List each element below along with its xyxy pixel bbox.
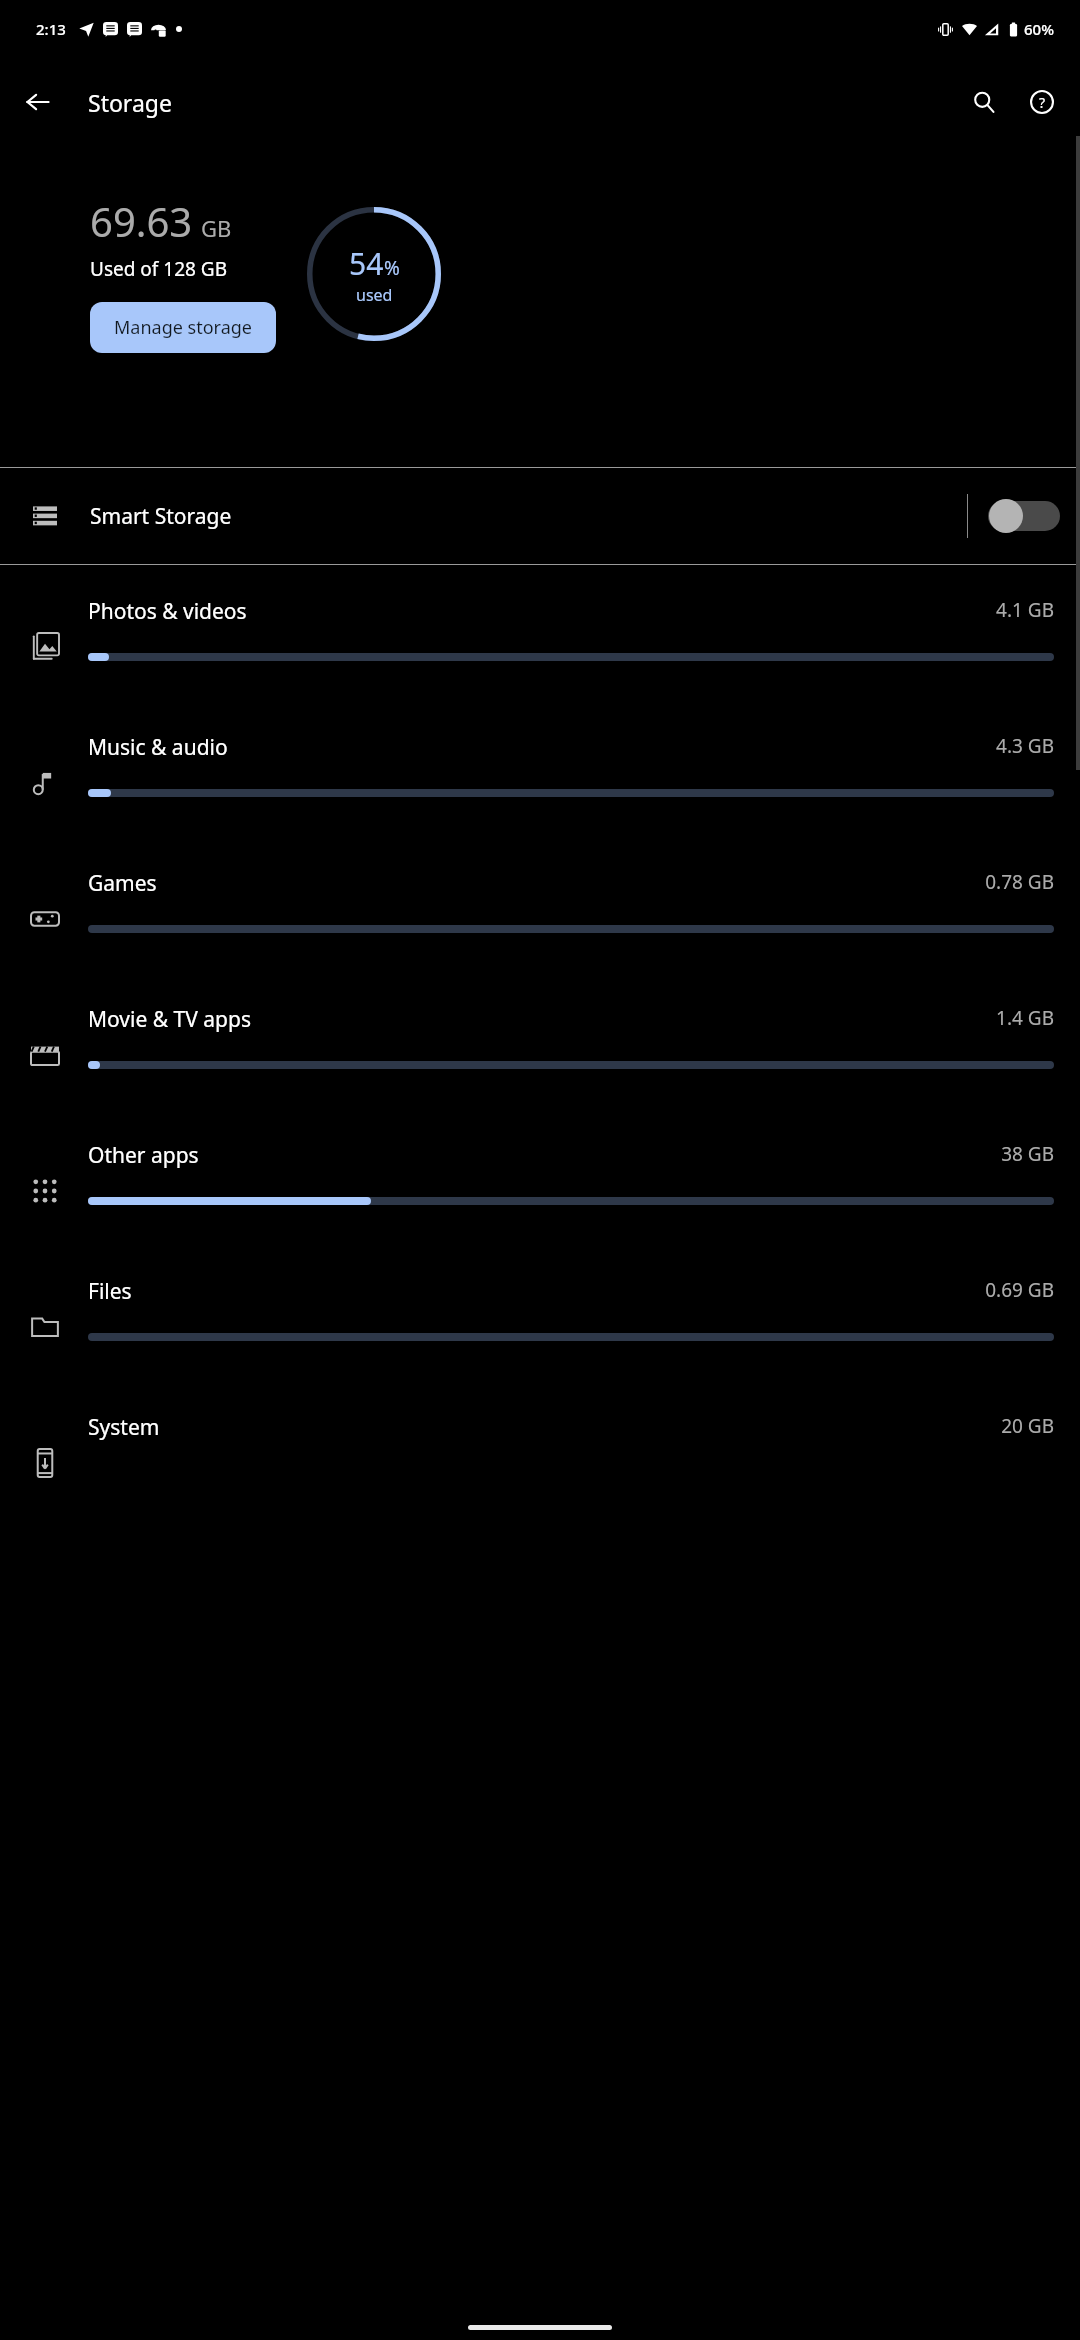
staticText: Music & audio bbox=[88, 733, 996, 762]
staticText: % bbox=[384, 255, 400, 281]
staticText: Used of 128 GB bbox=[90, 256, 228, 282]
button[interactable]: Other apps bbox=[0, 1123, 1080, 1259]
button[interactable]: Search bbox=[960, 78, 1008, 126]
staticText: 0.69 GB bbox=[985, 1277, 1054, 1303]
staticText: 4.3 GB bbox=[996, 733, 1054, 759]
button[interactable]: Photos & videos bbox=[0, 579, 1080, 715]
staticText: 4.1 GB bbox=[996, 597, 1054, 623]
staticText: 38 GB bbox=[1001, 1141, 1054, 1167]
staticText: GB bbox=[201, 213, 232, 243]
staticText: Other apps bbox=[88, 1141, 1001, 1170]
staticText: ? bbox=[1039, 93, 1046, 112]
staticText: Games bbox=[88, 869, 985, 898]
button[interactable]: Help bbox=[1018, 78, 1066, 126]
staticText: Photos & videos bbox=[88, 597, 996, 626]
staticText: 1.4 GB bbox=[996, 1005, 1054, 1031]
staticText: 69.63 bbox=[90, 194, 193, 248]
staticText: 20 GB bbox=[1001, 1413, 1054, 1439]
button[interactable]: Back bbox=[14, 78, 62, 126]
staticText: Movie & TV apps bbox=[88, 1005, 996, 1034]
staticText: Files bbox=[88, 1277, 985, 1306]
button[interactable]: Movie & TV apps bbox=[0, 987, 1080, 1123]
staticText: Smart Storage bbox=[90, 502, 967, 531]
staticText: 2:13 bbox=[36, 19, 66, 39]
staticText: 60% bbox=[1024, 19, 1054, 39]
button[interactable]: Music & audio bbox=[0, 715, 1080, 851]
staticText: used bbox=[356, 284, 393, 306]
button[interactable]: System bbox=[0, 1395, 1080, 1531]
staticText: 54 bbox=[349, 243, 384, 284]
button[interactable]: Files bbox=[0, 1259, 1080, 1395]
staticText: System bbox=[88, 1413, 1001, 1442]
staticText: 0.78 GB bbox=[985, 869, 1054, 895]
button[interactable]: Smart Storage toggle bbox=[988, 494, 1060, 538]
button[interactable]: Games bbox=[0, 851, 1080, 987]
staticText: Manage storage bbox=[114, 315, 252, 340]
button[interactable]: Manage storage bbox=[90, 302, 276, 353]
staticText: Storage bbox=[88, 87, 172, 118]
button[interactable]: Smart Storage bbox=[0, 468, 1080, 564]
